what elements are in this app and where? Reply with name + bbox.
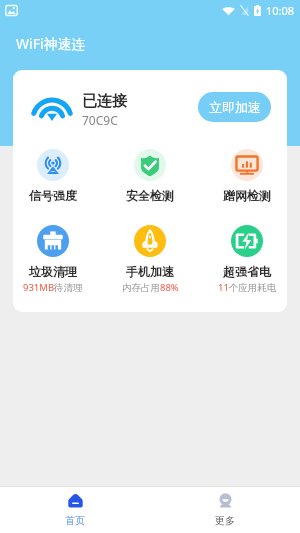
staticText: 信号强度 bbox=[29, 188, 77, 203]
staticText: 11个应用耗电 bbox=[218, 281, 277, 294]
button[interactable]: Home bbox=[0, 487, 150, 533]
staticText: 70C9C bbox=[82, 112, 118, 128]
staticText: WiFi神速连 bbox=[16, 34, 86, 53]
button[interactable]: 蹭网检测 bbox=[214, 149, 280, 203]
staticText: 立即加速 bbox=[209, 99, 261, 115]
other: More bbox=[218, 493, 233, 508]
staticText: 首页 bbox=[65, 514, 85, 527]
button[interactable]: More bbox=[150, 487, 300, 533]
button[interactable]: 信号强度 bbox=[20, 149, 86, 203]
staticText: 931MB待清理 bbox=[23, 281, 83, 294]
staticText: 内存占用88% bbox=[122, 281, 179, 294]
button[interactable]: 垃圾清理 bbox=[20, 225, 86, 294]
staticText: 已连接 bbox=[82, 92, 127, 111]
staticText: 垃圾清理 bbox=[29, 264, 77, 279]
button[interactable]: 超强省电 bbox=[214, 225, 280, 294]
staticText: 安全检测 bbox=[126, 188, 174, 203]
staticText: 10:08 bbox=[266, 3, 295, 18]
staticText: 蹭网检测 bbox=[223, 188, 271, 203]
button[interactable]: 立即加速 bbox=[198, 92, 271, 122]
button[interactable]: 安全检测 bbox=[117, 149, 183, 203]
button[interactable]: 手机加速 bbox=[117, 225, 183, 294]
staticText: 超强省电 bbox=[223, 264, 271, 279]
staticText: 更多 bbox=[215, 514, 235, 527]
staticText: 手机加速 bbox=[126, 264, 174, 279]
other: Home bbox=[68, 493, 83, 508]
